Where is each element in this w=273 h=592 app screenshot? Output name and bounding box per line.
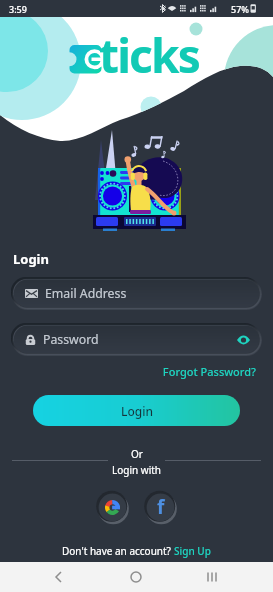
staticText: 3:59 [9,3,27,15]
staticText: 57% [231,3,249,15]
button[interactable]: Forgot Password? [0,364,256,379]
button[interactable]: Login [33,395,240,426]
staticText: Login [13,250,49,268]
button[interactable]: Sign in with Google [97,492,128,523]
button[interactable]: Sign Up [174,544,211,558]
other: Eticks logo [0,17,273,112]
button[interactable]: Email Address [12,278,261,309]
staticText: Password [43,331,99,348]
staticText: Login with [112,463,162,477]
button[interactable]: Password [12,324,261,355]
staticText: Email Address [45,285,127,302]
button[interactable]: Sign in with Facebook [145,492,176,523]
staticText: Or [131,447,143,461]
staticText: ticks [99,24,200,87]
staticText: Don't have an account? [62,544,174,558]
staticText: f [157,494,165,520]
staticText: Login [121,403,153,419]
other: Show password [237,335,250,345]
